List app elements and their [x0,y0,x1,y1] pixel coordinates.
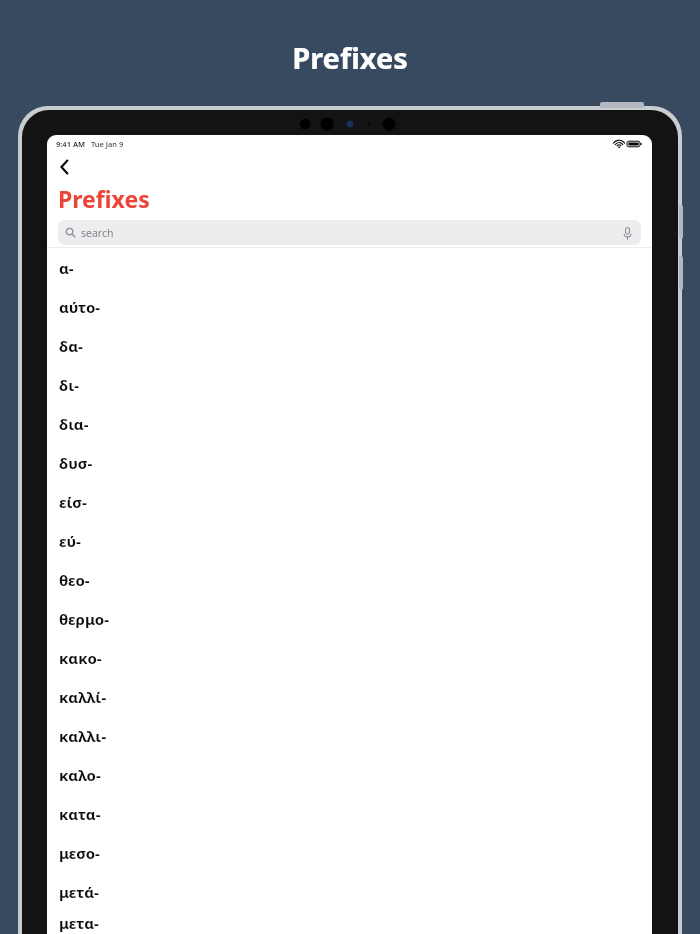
staticText: δι- [59,375,79,395]
button[interactable]: είσ- [47,482,652,521]
button[interactable]: αύτο- [47,287,652,326]
button[interactable]: καλλι- [47,716,652,755]
button[interactable]: θερμο- [47,599,652,638]
staticText: δυσ- [59,453,93,473]
staticText: αύτο- [59,297,101,317]
button[interactable]: μεσο- [47,833,652,872]
button[interactable]: μετά- [47,872,652,911]
button[interactable]: δα- [47,326,652,365]
staticText: Prefixes [58,183,150,214]
staticText: Tue Jan 9 [91,139,124,149]
button[interactable]: δια- [47,404,652,443]
staticText: θεο- [59,570,90,590]
button[interactable]: search [58,220,641,245]
button[interactable]: κατα- [47,794,652,833]
staticText: θερμο- [59,609,109,629]
staticText: μεσο- [59,843,100,863]
staticText: κατα- [59,804,101,824]
button[interactable]: α- [47,248,652,287]
staticText: καλο- [59,765,101,785]
button[interactable]: καλο- [47,755,652,794]
staticText: κακο- [59,648,102,668]
button[interactable]: μετα- [47,911,652,934]
staticText: 9:41 AM [56,139,85,149]
button[interactable]: Voice search [620,226,634,240]
staticText: καλλί- [59,687,107,707]
button[interactable]: δυσ- [47,443,652,482]
staticText: καλλι- [59,726,107,746]
button[interactable]: Back [47,153,81,181]
staticText: α- [59,258,74,278]
staticText: Prefixes [0,38,700,77]
staticText: δα- [59,336,83,356]
staticText: μετα- [59,913,99,933]
button[interactable]: θεο- [47,560,652,599]
staticText: search [81,226,114,240]
button[interactable]: εύ- [47,521,652,560]
button[interactable]: καλλί- [47,677,652,716]
staticText: είσ- [59,492,87,512]
button[interactable]: δι- [47,365,652,404]
staticText: εύ- [59,531,81,551]
staticText: δια- [59,414,89,434]
button[interactable]: κακο- [47,638,652,677]
staticText: μετά- [59,882,99,902]
